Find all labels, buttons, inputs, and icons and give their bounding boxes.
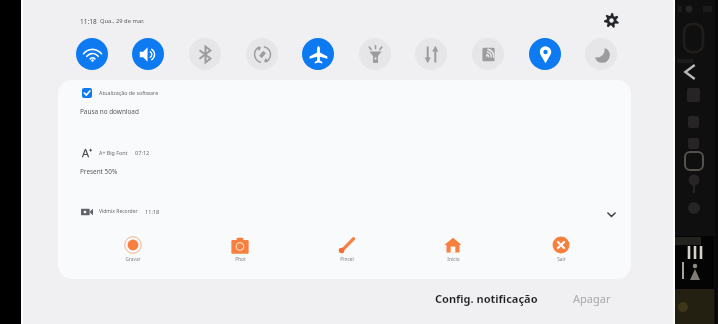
button[interactable]: Atualização de software (81, 80, 631, 122)
staticText: 07:12 (135, 149, 150, 157)
button[interactable]: Auto rotate (246, 38, 278, 70)
staticText: Pausa no download (80, 107, 139, 116)
staticText: Qua., 29 de mar. (100, 17, 145, 25)
staticText: 11:18 (145, 208, 160, 216)
button[interactable]: Config. notificação (425, 286, 548, 311)
button[interactable]: Flashlight (359, 38, 391, 70)
button[interactable]: NFC (472, 38, 504, 70)
staticText: Pincel (340, 256, 354, 263)
staticText: Config. notificação (435, 291, 538, 306)
button[interactable]: Apagar (563, 286, 621, 311)
button[interactable]: Sair (539, 236, 583, 272)
button[interactable]: Mobile data (415, 38, 447, 70)
button[interactable]: Volume (132, 38, 164, 70)
button[interactable]: Do not disturb (585, 38, 617, 70)
staticText: Apagar (573, 291, 611, 306)
button[interactable]: Expand notification (602, 205, 620, 223)
button[interactable]: Início (431, 236, 475, 272)
staticText: Sair (557, 256, 566, 263)
button[interactable]: Vidmix Recorder (81, 202, 631, 224)
button[interactable]: Wi-Fi (76, 38, 108, 70)
staticText: A+ Big Font (99, 149, 128, 156)
staticText: Atualização de software (99, 89, 159, 96)
staticText: Present 50% (80, 167, 118, 176)
button[interactable]: Location (529, 38, 561, 70)
staticText: Phot (235, 256, 246, 263)
button[interactable]: Settings (600, 9, 622, 31)
button[interactable]: Phot (218, 236, 262, 272)
staticText: Vidmix Recorder (99, 208, 138, 215)
button[interactable]: Airplane mode (302, 38, 334, 70)
button[interactable]: Bluetooth (189, 38, 221, 70)
button[interactable]: A+ Big Font (81, 140, 631, 182)
button[interactable]: Pincel (325, 236, 369, 272)
staticText: Início (447, 256, 460, 263)
staticText: Gravar (125, 256, 141, 263)
button[interactable]: Gravar (111, 236, 155, 272)
staticText: 11:18 (80, 17, 97, 26)
